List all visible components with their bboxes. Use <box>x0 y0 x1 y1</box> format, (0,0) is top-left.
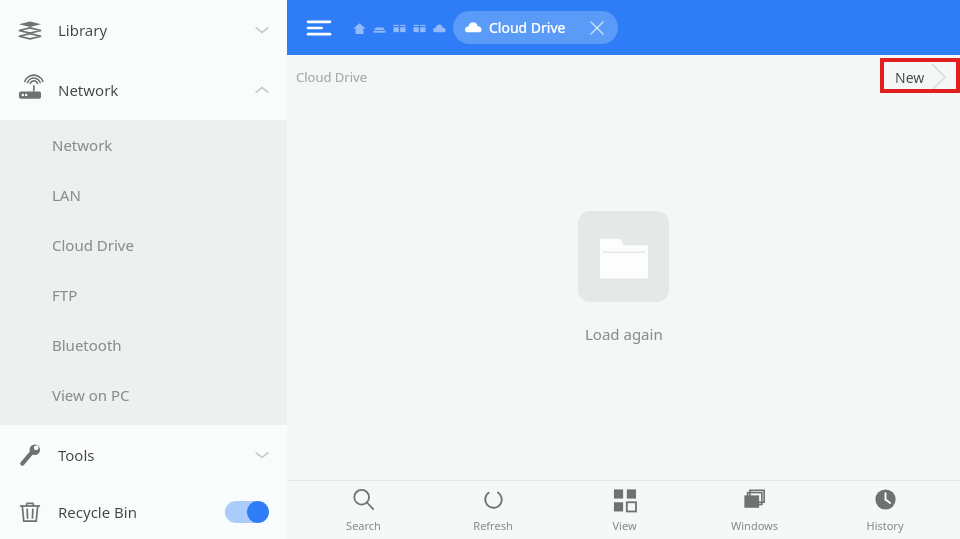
button[interactable]: Tab <box>349 8 369 48</box>
staticText: Network <box>58 80 119 100</box>
button[interactable]: New <box>895 64 945 90</box>
staticText: Library <box>58 20 108 40</box>
button[interactable]: Tab <box>389 8 409 48</box>
button[interactable]: Tab <box>409 8 429 48</box>
button[interactable]: Library <box>0 0 287 60</box>
button[interactable]: Cloud Drive <box>296 55 367 98</box>
staticText: Cloud Drive <box>489 18 566 37</box>
button[interactable]: Refresh <box>438 481 548 539</box>
button[interactable]: Close tab <box>586 17 608 39</box>
button[interactable]: Cloud Drive <box>0 220 287 270</box>
staticText: Tools <box>58 445 95 465</box>
button[interactable]: Windows <box>699 481 809 539</box>
button[interactable]: Recycle Bin toggle <box>225 501 269 523</box>
staticText: LAN <box>52 185 81 205</box>
button[interactable]: View on PC <box>0 370 287 420</box>
button[interactable]: Search <box>308 481 418 539</box>
staticText: Cloud Drive <box>52 235 134 255</box>
staticText: Bluetooth <box>52 335 122 355</box>
button[interactable]: Cloud Drive <box>453 11 618 44</box>
button[interactable]: History <box>830 481 940 539</box>
staticText: View <box>612 518 637 533</box>
button[interactable]: Tab <box>429 8 449 48</box>
staticText: Recycle Bin <box>58 502 137 522</box>
staticText: Windows <box>731 518 778 533</box>
button[interactable]: LAN <box>0 170 287 220</box>
staticText: Search <box>346 518 381 533</box>
button[interactable]: Menu <box>299 8 339 48</box>
button[interactable]: Tab <box>369 8 389 48</box>
button[interactable]: Network <box>0 120 287 170</box>
staticText: New <box>895 68 925 87</box>
staticText: Refresh <box>473 518 513 533</box>
staticText: View on PC <box>52 385 130 405</box>
staticText: Network <box>52 135 113 155</box>
button[interactable]: Load again <box>585 324 663 344</box>
button[interactable]: View <box>569 481 679 539</box>
button[interactable]: Bluetooth <box>0 320 287 370</box>
staticText: History <box>866 518 904 533</box>
button[interactable]: Network <box>0 60 287 120</box>
button[interactable]: Recycle Bin <box>0 485 287 539</box>
button[interactable]: FTP <box>0 270 287 320</box>
staticText: Cloud Drive <box>296 68 367 86</box>
staticText: FTP <box>52 285 78 305</box>
button[interactable]: Tools <box>0 425 287 485</box>
